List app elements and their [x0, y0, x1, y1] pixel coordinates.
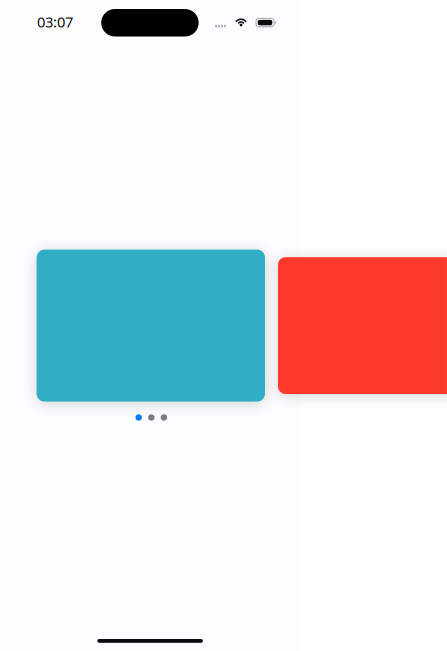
- button[interactable]: Featured card 2: [278, 257, 447, 394]
- staticText: 03:07: [37, 12, 73, 31]
- button[interactable]: Featured card 1: [37, 250, 265, 402]
